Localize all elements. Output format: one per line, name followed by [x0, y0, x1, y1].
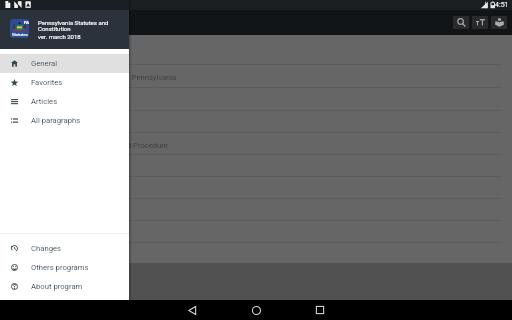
staticText: Constitution of the Commonwealth of Penn…: [3, 73, 177, 82]
staticText: Articles: [31, 97, 58, 106]
button[interactable]: [0, 243, 512, 265]
button[interactable]: Constitution of the Commonwealth of Penn…: [0, 65, 512, 88]
button[interactable]: About program: [0, 277, 129, 296]
staticText: Pennsylvania Statutes and Constitution: [38, 19, 109, 33]
button[interactable]: [0, 35, 512, 65]
staticText: General: [31, 59, 58, 68]
staticText: Statutes: [12, 32, 28, 37]
button[interactable]: Search: [453, 16, 469, 29]
staticText: All paragraphs: [31, 116, 81, 125]
button[interactable]: [0, 221, 512, 243]
button[interactable]: Favorites: [0, 73, 129, 92]
button[interactable]: Home: [224, 300, 288, 320]
button[interactable]: [0, 199, 512, 221]
button[interactable]: Changes: [0, 239, 129, 258]
staticText: Favorites: [31, 78, 63, 87]
button[interactable]: Text size: [472, 16, 488, 29]
staticText: PA: [24, 20, 29, 25]
button[interactable]: All paragraphs: [0, 111, 129, 130]
button[interactable]: Title 42. Judiciary and Procedure: [0, 133, 512, 155]
staticText: Others programs: [31, 263, 89, 272]
staticText: Changes: [31, 244, 62, 253]
button[interactable]: General: [0, 54, 129, 73]
staticText: About program: [31, 282, 83, 291]
button[interactable]: Articles: [0, 92, 129, 111]
button[interactable]: [0, 177, 512, 199]
staticText: Title 42. Judiciary and Procedure: [57, 141, 168, 150]
button[interactable]: Back: [160, 300, 224, 320]
button[interactable]: [0, 111, 512, 133]
button[interactable]: [0, 88, 512, 111]
button[interactable]: Reading mode: [491, 16, 507, 29]
button[interactable]: [0, 155, 512, 177]
button[interactable]: Others programs: [0, 258, 129, 277]
staticText: ver. march 2018: [38, 33, 81, 40]
button[interactable]: Recents: [288, 300, 352, 320]
staticText: 4:51: [495, 1, 509, 9]
